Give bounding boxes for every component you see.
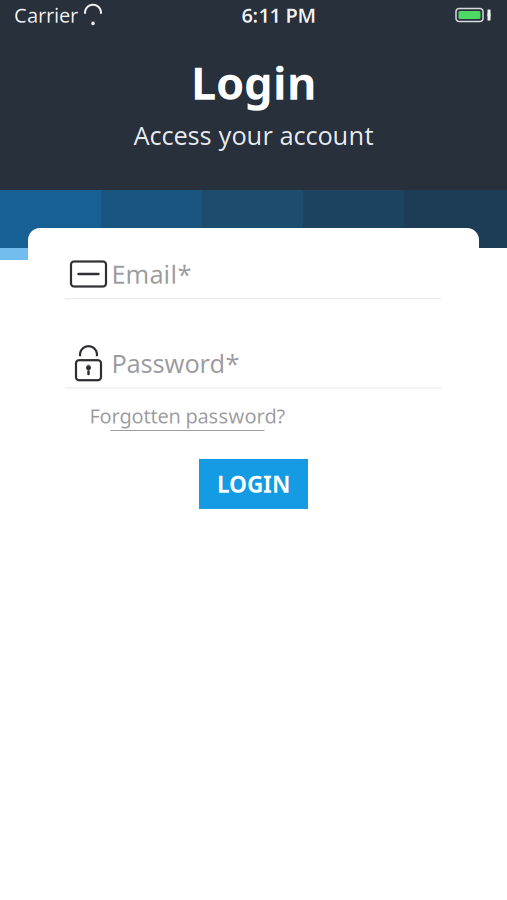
staticText: 6:11 PM	[241, 2, 316, 28]
staticText: Password*	[111, 346, 239, 380]
staticText: Access your account	[133, 118, 373, 152]
staticText: Forgotten password?	[89, 402, 285, 429]
staticText: Email*	[111, 257, 191, 291]
staticText: Carrier	[14, 2, 78, 28]
staticText: Login	[191, 52, 316, 112]
staticText: LOGIN	[217, 469, 290, 499]
button[interactable]: LOGIN	[199, 459, 308, 509]
button[interactable]: Forgotten password?	[89, 402, 285, 431]
